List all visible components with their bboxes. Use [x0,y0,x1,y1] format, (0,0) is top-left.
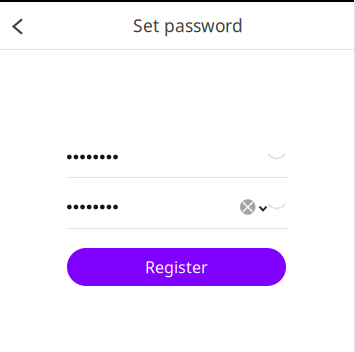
button[interactable]: Show password [267,197,288,217]
button[interactable]: Password suggestions [256,197,267,217]
staticText: Register [145,256,208,278]
button[interactable]: Show password [267,147,288,167]
button[interactable]: Back [0,5,35,46]
button[interactable]: Register [67,248,286,286]
button[interactable]: Clear text [239,197,256,217]
staticText: Set password [133,14,243,37]
